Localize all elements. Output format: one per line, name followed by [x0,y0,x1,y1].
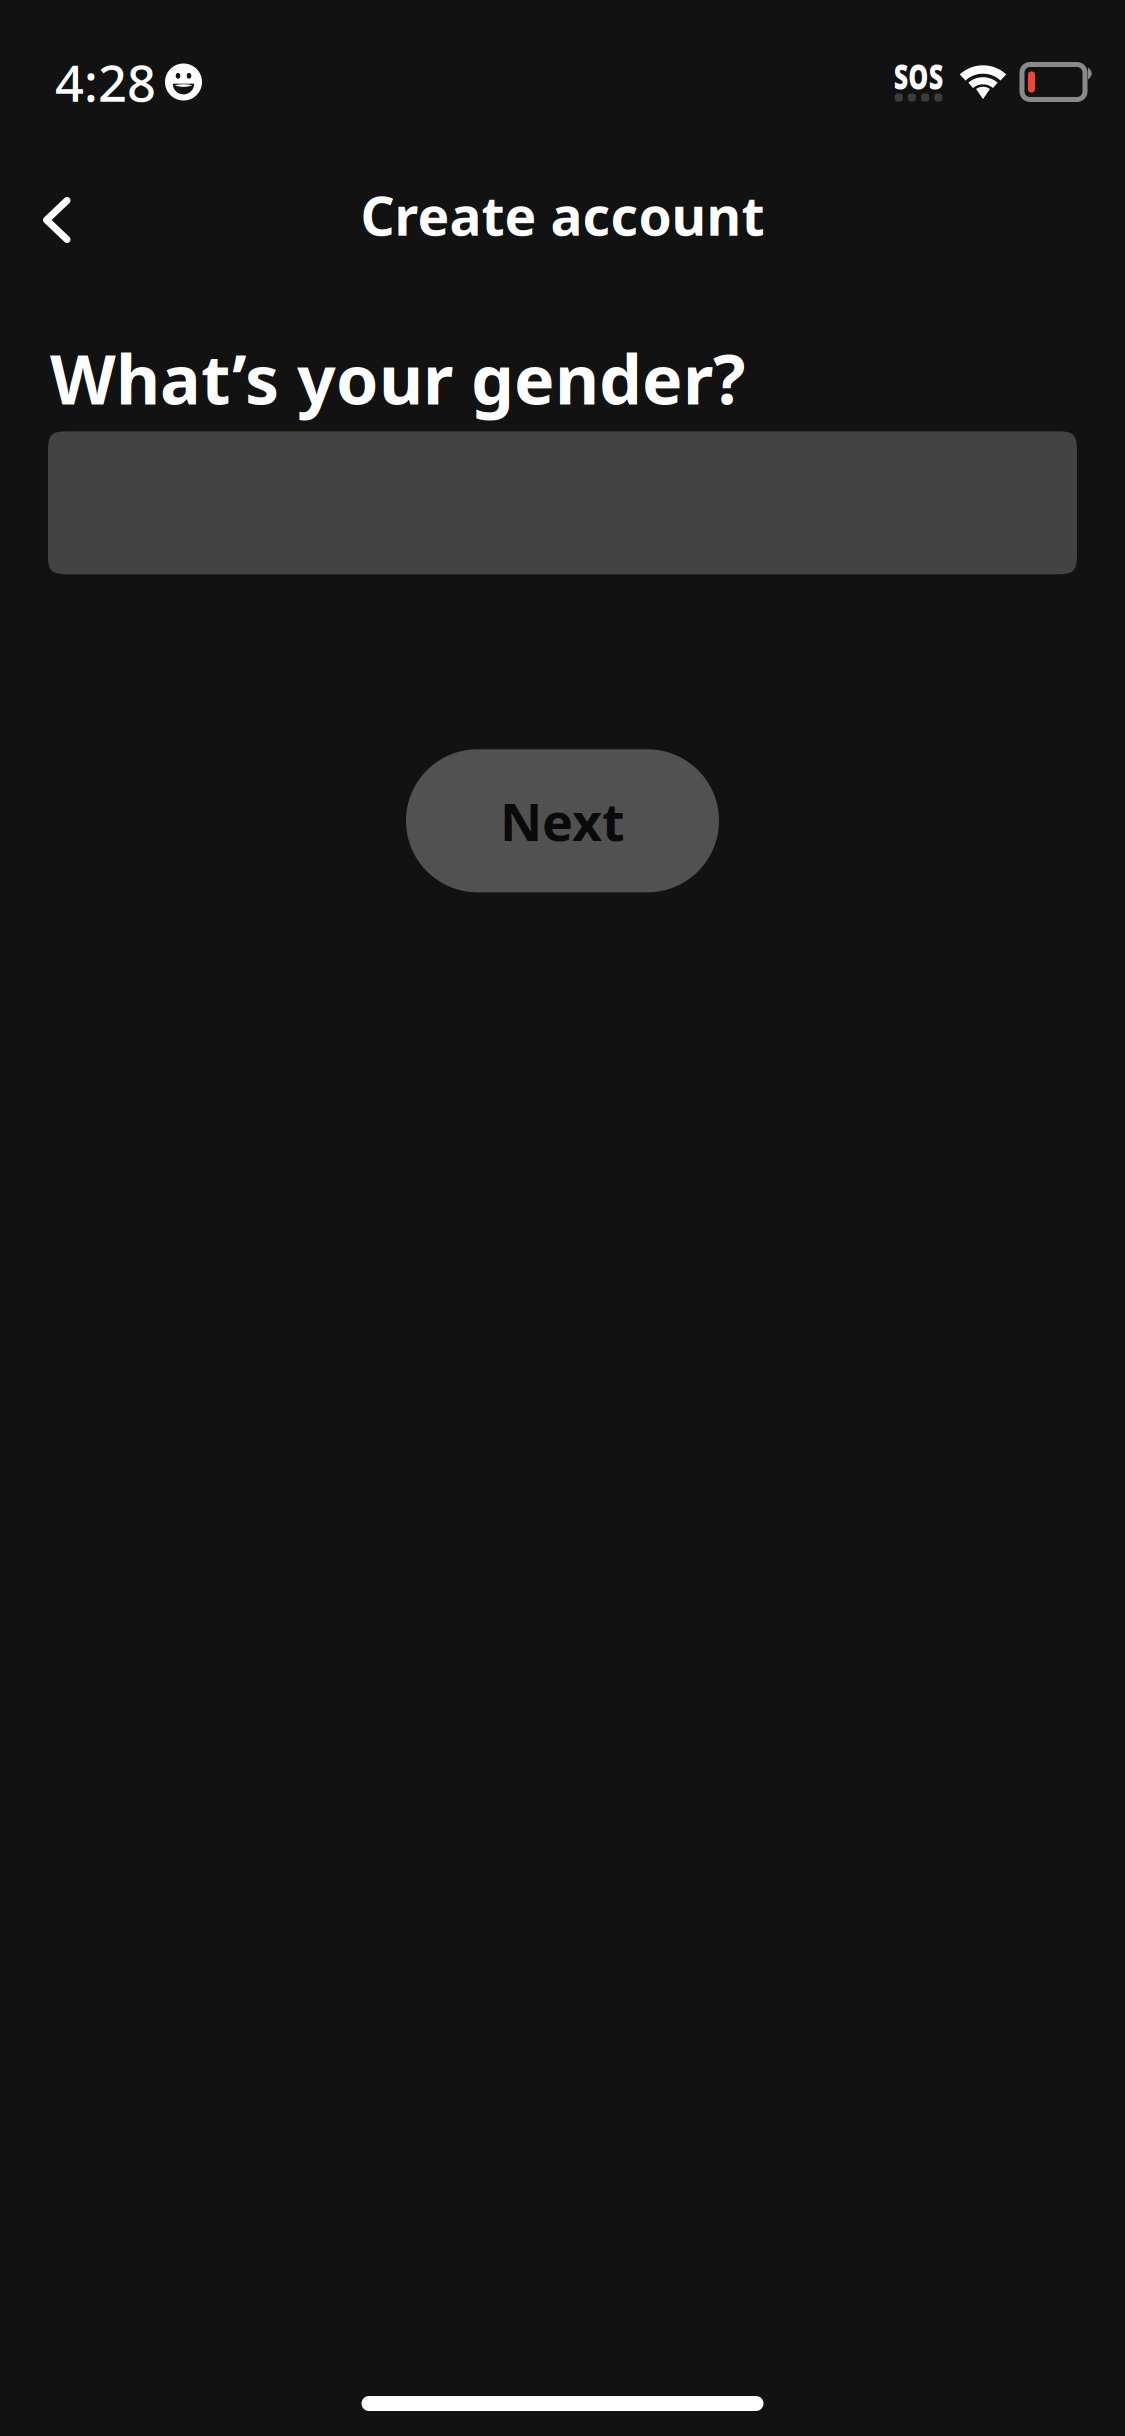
staticText: SOS [883,52,954,99]
staticText: 4:28 [55,48,156,116]
staticText: Next [500,786,625,855]
staticText: Create account [360,180,764,250]
button[interactable]: Gender [0,431,1125,574]
button[interactable]: Next [406,749,719,892]
button[interactable]: Back [0,168,115,268]
staticText: What’s your gender? [50,333,745,423]
